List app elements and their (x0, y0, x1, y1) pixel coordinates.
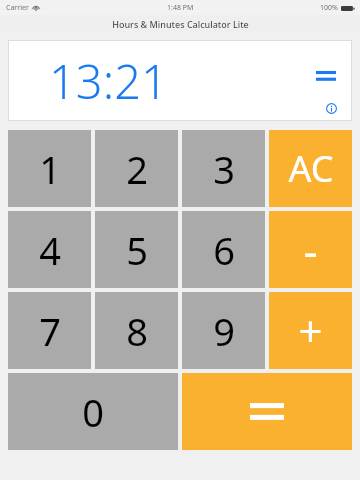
button[interactable]: + (269, 292, 352, 369)
staticText: 13:21 (49, 49, 168, 113)
staticText: - (303, 220, 318, 280)
button[interactable]: Equals (182, 373, 352, 450)
staticText: 0 (82, 386, 104, 438)
button[interactable]: 0 (8, 373, 178, 450)
button[interactable]: 9 (182, 292, 265, 369)
button[interactable]: 5 (95, 211, 178, 288)
staticText: 5 (126, 224, 148, 276)
button[interactable]: Equals (311, 65, 341, 87)
staticText: 6 (213, 224, 235, 276)
button[interactable]: 13:21 (9, 41, 351, 120)
staticText: + (298, 302, 323, 359)
button[interactable]: 1 (8, 130, 91, 207)
staticText: Hours & Minutes Calculator Lite (112, 18, 249, 30)
button[interactable]: - (269, 211, 352, 288)
staticText: 9 (213, 305, 235, 357)
button[interactable]: 4 (8, 211, 91, 288)
staticText: AC (288, 144, 334, 193)
button[interactable]: 7 (8, 292, 91, 369)
staticText: 1 (39, 143, 61, 195)
staticText: Carrier (6, 3, 29, 13)
staticText: 100% (320, 3, 338, 13)
staticText: 3 (213, 143, 235, 195)
button[interactable]: 8 (95, 292, 178, 369)
staticText: 4 (39, 224, 61, 276)
button[interactable]: Info (322, 99, 340, 117)
button[interactable]: AC (269, 130, 352, 207)
button[interactable]: 3 (182, 130, 265, 207)
staticText: 8 (126, 305, 148, 357)
staticText: 7 (39, 305, 61, 357)
staticText: 1:48 PM (167, 3, 194, 13)
staticText: 2 (126, 143, 148, 195)
button[interactable]: 2 (95, 130, 178, 207)
button[interactable]: 6 (182, 211, 265, 288)
